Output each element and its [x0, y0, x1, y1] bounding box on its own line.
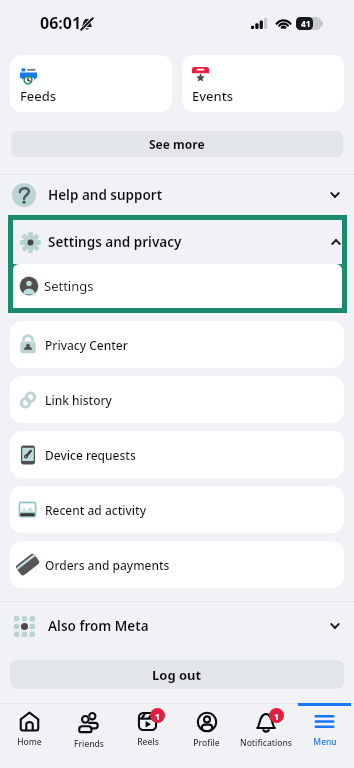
staticText: Device requests: [45, 447, 136, 463]
other: Menu: [315, 712, 334, 731]
button[interactable]: Link history: [10, 376, 344, 423]
button[interactable]: Events: [182, 55, 344, 112]
staticText: Link history: [45, 392, 112, 408]
staticText: Settings: [44, 277, 94, 295]
button[interactable]: Settings: [13, 264, 342, 308]
other: Profile: [197, 712, 217, 732]
button[interactable]: Device requests: [10, 431, 344, 478]
staticText: Settings and privacy: [48, 233, 332, 251]
button[interactable]: Orders and payments: [10, 541, 344, 588]
staticText: Help and support: [48, 186, 331, 204]
button[interactable]: Profile: [177, 704, 236, 768]
button[interactable]: Reels: [118, 704, 177, 768]
staticText: See more: [149, 136, 205, 152]
staticText: Also from Meta: [48, 617, 331, 635]
staticText: Feeds: [20, 87, 57, 105]
staticText: Notifications: [240, 737, 292, 749]
staticText: Reels: [137, 736, 159, 748]
staticText: Privacy Center: [45, 337, 128, 353]
staticText: Profile: [193, 737, 220, 749]
button[interactable]: Notifications: [236, 704, 295, 768]
staticText: Home: [17, 736, 42, 748]
button[interactable]: Help and support: [0, 175, 354, 215]
other: Home: [20, 712, 39, 731]
button[interactable]: Home: [0, 704, 59, 768]
staticText: Recent ad activity: [45, 502, 147, 518]
staticText: 06:01: [40, 12, 82, 34]
button[interactable]: Also from Meta: [0, 606, 354, 646]
button[interactable]: Privacy Center: [10, 321, 344, 368]
staticText: Events: [192, 87, 234, 105]
staticText: 41: [301, 18, 311, 30]
other: Reels: [138, 712, 157, 731]
staticText: Friends: [74, 738, 104, 750]
staticText: Log out: [152, 666, 202, 684]
button[interactable]: Recent ad activity: [10, 486, 344, 533]
button[interactable]: See more: [11, 131, 343, 157]
staticText: 1: [155, 710, 161, 722]
staticText: Menu: [313, 736, 337, 748]
button[interactable]: Settings and privacy: [13, 220, 342, 264]
other: Notifications: [256, 712, 276, 732]
staticText: Orders and payments: [45, 557, 170, 573]
staticText: 1: [274, 710, 280, 722]
button[interactable]: Friends: [59, 704, 118, 768]
button[interactable]: Log out: [10, 660, 344, 689]
other: Friends: [78, 712, 99, 733]
button[interactable]: Feeds: [10, 55, 172, 112]
button[interactable]: Menu: [295, 704, 354, 768]
